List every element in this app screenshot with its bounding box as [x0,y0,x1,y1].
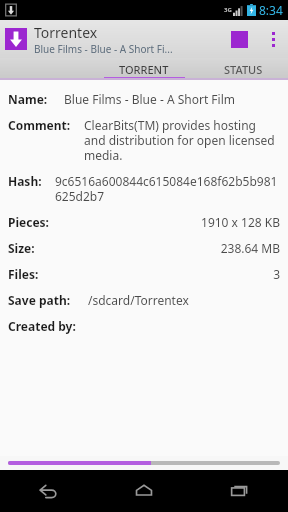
button[interactable]: Pieces: [0,209,288,235]
staticText: 9c6516a600844c615084e168f62b5b981625d2b7 [55,173,280,204]
staticText: ClearBits(TM) provides hosting and distr… [84,117,280,163]
staticText: Hash: [8,173,55,189]
button[interactable]: Recents [192,470,288,512]
button[interactable]: Home [96,470,192,512]
staticText: STATUS [224,62,263,77]
staticText: Blue Films - Blue - A Short Fi... [34,42,173,56]
button[interactable]: STATUS [214,58,288,80]
staticText: Name: [8,91,64,107]
staticText: Blue Films - Blue - A Short Film [64,91,280,107]
button[interactable]: More options [258,20,288,58]
button[interactable]: Hash: [0,168,288,209]
staticText: Files: [8,266,39,282]
staticText: 238.64 MB [35,240,280,256]
button[interactable]: TORRENT [74,58,214,80]
button[interactable]: Size: [0,235,288,261]
button[interactable]: Created by: [0,313,288,339]
staticText: Pieces: [8,214,49,230]
staticText: TORRENT [119,62,169,77]
staticText: 3G [224,6,232,14]
staticText: Save path: [8,292,88,308]
staticText: Comment: [8,117,84,133]
staticText: 3 [39,266,280,282]
button[interactable]: Name: [0,86,288,112]
button[interactable]: Back [0,470,96,512]
button[interactable]: Save path: [0,287,288,313]
staticText: Torrentex [34,23,98,42]
staticText: 1910 x 128 KB [49,214,280,230]
staticText: Created by: [8,318,88,334]
button[interactable]: Comment: [0,112,288,168]
staticText: Size: [8,240,35,256]
button[interactable]: Files: [0,261,288,287]
button[interactable] [0,58,74,80]
staticText: /sdcard/Torrentex [88,292,280,308]
button[interactable]: Stop [220,20,258,58]
staticText: 8:34 [259,2,283,18]
